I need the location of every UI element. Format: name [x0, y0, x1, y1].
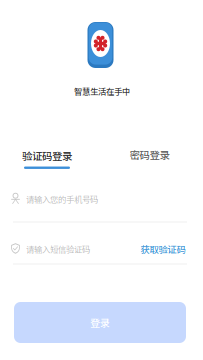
button[interactable]: 密码登录 — [117, 141, 181, 167]
staticText: 智慧生活在手中 — [74, 85, 130, 97]
button[interactable]: 验证码登录 — [11, 145, 83, 171]
button[interactable]: 登录 — [14, 302, 186, 343]
staticText: 请输入您的手机号码 — [26, 193, 98, 205]
staticText: 登录 — [90, 315, 110, 330]
staticText: 获取验证码 — [140, 242, 185, 256]
staticText: 验证码登录 — [22, 148, 72, 163]
staticText: 密码登录 — [129, 147, 169, 162]
staticText: 请输入短信验证码 — [26, 243, 90, 255]
button[interactable]: 获取验证码 — [137, 240, 189, 258]
